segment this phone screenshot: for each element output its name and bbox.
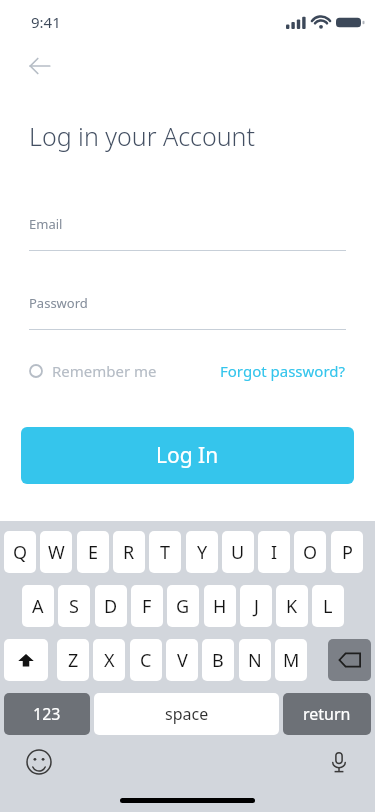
button[interactable]: H [204, 585, 236, 627]
button[interactable]: T [149, 531, 181, 573]
button[interactable]: return [283, 693, 371, 735]
staticText: G [176, 594, 190, 619]
button[interactable]: Email [29, 215, 346, 251]
staticText: M [283, 648, 300, 673]
staticText: H [213, 594, 227, 619]
staticText: N [248, 648, 262, 673]
button[interactable]: F [131, 585, 163, 627]
staticText: space [165, 703, 209, 725]
button[interactable]: Emoji [26, 749, 52, 775]
button[interactable]: A [22, 585, 54, 627]
button[interactable]: P [331, 531, 363, 573]
button[interactable]: Q [4, 531, 36, 573]
staticText: B [212, 648, 224, 673]
button[interactable]: D [95, 585, 127, 627]
staticText: 9:41 [31, 12, 61, 32]
button[interactable]: Forgot password? [220, 361, 346, 381]
button[interactable]: K [276, 585, 308, 627]
staticText: Forgot password? [220, 361, 346, 381]
button[interactable]: space [94, 693, 279, 735]
staticText: K [286, 594, 298, 619]
button[interactable]: O [294, 531, 326, 573]
button[interactable]: Y [186, 531, 218, 573]
button[interactable]: Voice input [326, 749, 352, 775]
button[interactable]: S [58, 585, 90, 627]
staticText: D [104, 594, 118, 619]
staticText: O [303, 540, 318, 565]
button[interactable]: 123 [4, 693, 90, 735]
button[interactable]: B [202, 639, 234, 681]
staticText: Log in your Account [29, 119, 255, 153]
staticText: X [104, 648, 115, 673]
staticText: Log In [156, 441, 219, 470]
staticText: Y [197, 540, 208, 565]
staticText: S [69, 594, 79, 619]
button[interactable]: Shift [4, 639, 48, 681]
staticText: I [271, 540, 278, 565]
button[interactable]: Password [29, 294, 346, 330]
staticText: 123 [33, 703, 61, 725]
staticText: E [88, 540, 99, 565]
staticText: return [303, 703, 351, 725]
button[interactable]: R [113, 531, 145, 573]
button[interactable]: E [77, 531, 109, 573]
button[interactable]: V [166, 639, 198, 681]
button[interactable]: W [40, 531, 72, 573]
button[interactable]: Backspace [328, 639, 371, 681]
button[interactable]: C [130, 639, 162, 681]
button[interactable]: Back [22, 48, 58, 84]
staticText: Z [68, 648, 79, 673]
button[interactable]: Log In [21, 427, 354, 484]
staticText: C [140, 648, 152, 673]
staticText: Password [29, 294, 88, 312]
staticText: Remember me [52, 361, 157, 381]
button[interactable]: L [312, 585, 344, 627]
staticText: R [123, 540, 135, 565]
staticText: P [342, 540, 353, 565]
staticText: Q [13, 540, 28, 565]
staticText: F [142, 594, 152, 619]
button[interactable]: J [240, 585, 272, 627]
button[interactable]: X [93, 639, 125, 681]
staticText: T [160, 540, 171, 565]
staticText: W [48, 540, 65, 565]
button[interactable]: I [258, 531, 290, 573]
button[interactable]: M [275, 639, 307, 681]
button[interactable]: G [167, 585, 199, 627]
staticText: J [254, 594, 259, 619]
staticText: V [177, 648, 188, 673]
button[interactable]: N [239, 639, 271, 681]
button[interactable]: Remember me [29, 361, 157, 381]
staticText: Email [29, 215, 63, 233]
staticText: U [231, 540, 245, 565]
button[interactable]: U [222, 531, 254, 573]
staticText: A [32, 594, 44, 619]
staticText: L [323, 594, 333, 619]
button[interactable]: Z [57, 639, 89, 681]
